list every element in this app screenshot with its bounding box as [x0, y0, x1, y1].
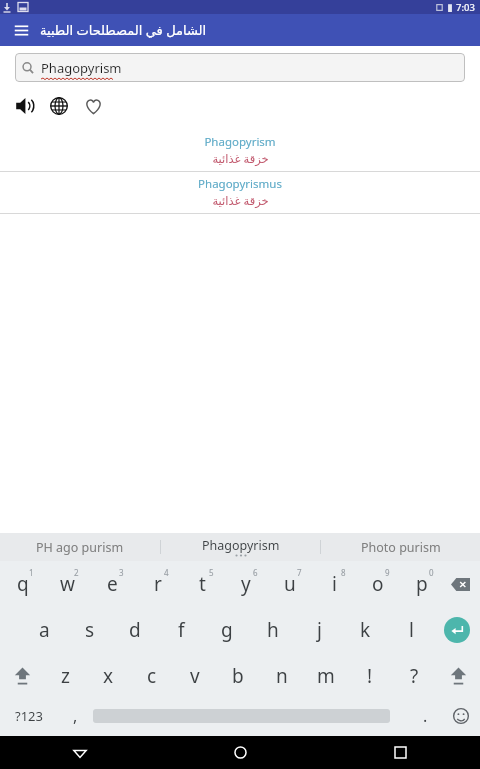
- staticText: x: [103, 663, 114, 689]
- staticText: c: [147, 663, 157, 689]
- staticText: p: [416, 571, 428, 597]
- button[interactable]: Translate language: [44, 91, 74, 121]
- button[interactable]: m: [304, 653, 348, 699]
- staticText: k: [360, 617, 371, 643]
- button[interactable]: r: [135, 561, 180, 607]
- button[interactable]: b: [216, 653, 260, 699]
- staticText: e: [107, 571, 118, 597]
- staticText: y: [241, 571, 251, 597]
- staticText: ?: [410, 663, 419, 689]
- button[interactable]: p: [400, 561, 444, 607]
- staticText: r: [154, 571, 162, 597]
- staticText: ,: [73, 705, 78, 727]
- button[interactable]: t: [180, 561, 224, 607]
- staticText: Phagopyrism: [204, 134, 276, 150]
- button[interactable]: Shift: [436, 653, 480, 699]
- button[interactable]: l: [388, 607, 434, 653]
- staticText: n: [276, 663, 288, 689]
- staticText: j: [317, 617, 322, 643]
- staticText: t: [199, 571, 206, 597]
- button[interactable]: w: [45, 561, 90, 607]
- staticText: i: [332, 571, 337, 597]
- button[interactable]: z: [44, 653, 87, 699]
- button[interactable]: Backspace: [440, 561, 480, 607]
- button[interactable]: i: [312, 561, 356, 607]
- button[interactable]: h: [250, 607, 296, 653]
- button[interactable]: q: [0, 561, 45, 607]
- staticText: 7:03: [456, 1, 475, 14]
- staticText: 2: [74, 567, 79, 578]
- staticText: 5: [209, 567, 214, 578]
- staticText: w: [60, 571, 75, 597]
- button[interactable]: v: [173, 653, 216, 699]
- button[interactable]: Recent apps: [320, 736, 480, 769]
- staticText: خزقة غذائية: [212, 193, 269, 209]
- button[interactable]: e: [90, 561, 135, 607]
- button[interactable]: u: [268, 561, 312, 607]
- staticText: 7: [297, 567, 302, 578]
- button[interactable]: j: [296, 607, 342, 653]
- button[interactable]: ?: [392, 653, 436, 699]
- button[interactable]: Search: [15, 53, 465, 82]
- other: Search: [22, 62, 34, 74]
- button[interactable]: k: [342, 607, 388, 653]
- staticText: Photo purism: [361, 539, 441, 556]
- button[interactable]: Comma: [58, 699, 93, 733]
- staticText: Phagopyrism: [202, 537, 280, 554]
- button[interactable]: Open navigation menu: [8, 17, 34, 43]
- button[interactable]: !: [348, 653, 392, 699]
- button[interactable]: Pronounce: [10, 91, 40, 121]
- staticText: a: [39, 617, 50, 643]
- button[interactable]: y: [224, 561, 268, 607]
- staticText: b: [232, 663, 244, 689]
- staticText: 3: [119, 567, 124, 578]
- button[interactable]: Back: [0, 736, 160, 769]
- button[interactable]: c: [130, 653, 173, 699]
- button[interactable]: g: [204, 607, 250, 653]
- staticText: d: [129, 617, 141, 643]
- staticText: o: [372, 571, 384, 597]
- staticText: .: [423, 705, 428, 727]
- button[interactable]: f: [158, 607, 204, 653]
- staticText: s: [85, 617, 95, 643]
- staticText: h: [267, 617, 279, 643]
- staticText: 4: [164, 567, 169, 578]
- staticText: Phagopyrism: [41, 59, 122, 77]
- staticText: 6: [253, 567, 258, 578]
- staticText: 9: [385, 567, 390, 578]
- staticText: m: [317, 663, 335, 689]
- button[interactable]: a: [22, 607, 67, 653]
- staticText: خزقة غذائية: [212, 151, 269, 167]
- button[interactable]: x: [87, 653, 130, 699]
- button[interactable]: Photo purism: [321, 539, 480, 556]
- staticText: l: [409, 617, 414, 643]
- button[interactable]: n: [260, 653, 304, 699]
- button[interactable]: Period: [408, 699, 442, 733]
- button[interactable]: Enter: [434, 607, 480, 653]
- staticText: 8: [341, 567, 346, 578]
- staticText: z: [61, 663, 70, 689]
- staticText: v: [190, 663, 200, 689]
- button[interactable]: ?123: [0, 699, 58, 733]
- staticText: Phagopyrismus: [198, 176, 282, 192]
- staticText: 1: [29, 567, 34, 578]
- staticText: الشامل في المصطلحات الطبية: [40, 21, 207, 39]
- button[interactable]: o: [356, 561, 400, 607]
- button[interactable]: Phagopyrism: [0, 130, 480, 171]
- staticText: u: [284, 571, 296, 597]
- button[interactable]: Phagopyrismus: [0, 172, 480, 213]
- button[interactable]: PH ago purism: [0, 539, 160, 556]
- staticText: !: [367, 663, 373, 689]
- button[interactable]: Home: [160, 736, 320, 769]
- staticText: ?123: [15, 707, 43, 725]
- button[interactable]: Emoji: [442, 699, 480, 733]
- button[interactable]: s: [67, 607, 112, 653]
- staticText: q: [17, 571, 29, 597]
- button[interactable]: d: [112, 607, 158, 653]
- button[interactable]: Shift: [0, 653, 44, 699]
- button[interactable]: Add to favorites: [78, 91, 108, 121]
- button[interactable]: Phagopyrism: [161, 537, 320, 554]
- staticText: f: [178, 617, 185, 643]
- staticText: PH ago purism: [36, 539, 124, 556]
